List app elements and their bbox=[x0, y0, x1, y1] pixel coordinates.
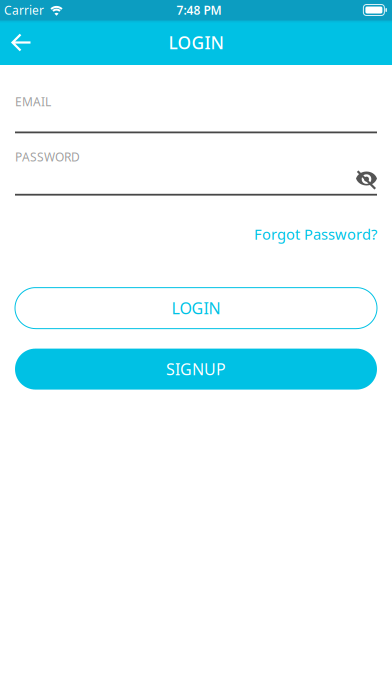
staticText: EMAIL bbox=[15, 93, 51, 109]
staticText: LOGIN bbox=[171, 297, 220, 319]
button[interactable]: LOGIN bbox=[15, 288, 377, 329]
staticText: Forgot Password? bbox=[254, 224, 377, 244]
staticText: PASSWORD bbox=[15, 149, 80, 165]
button[interactable]: Back bbox=[0, 20, 32, 65]
button[interactable]: Forgot Password? bbox=[254, 224, 377, 244]
button[interactable]: Show password bbox=[356, 171, 377, 190]
staticText: SIGNUP bbox=[166, 358, 226, 380]
staticText: 7:48 PM bbox=[176, 2, 221, 18]
staticText: Carrier bbox=[4, 2, 44, 18]
staticText: LOGIN bbox=[168, 31, 223, 54]
button[interactable]: SIGNUP bbox=[15, 349, 377, 390]
